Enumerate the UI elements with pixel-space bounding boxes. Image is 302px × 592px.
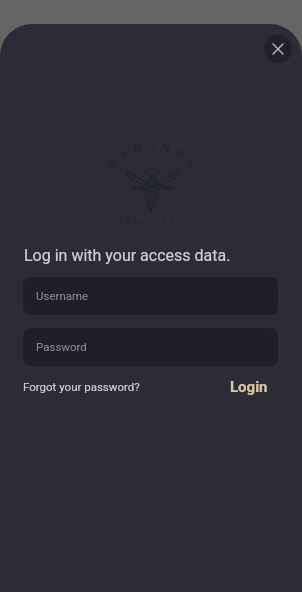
button[interactable]: Password [23,328,278,366]
staticText: Password [36,340,87,353]
staticText: Login [230,378,268,396]
staticText: Log in with your access data. [24,246,231,265]
button[interactable]: Login [230,378,268,396]
staticText: Forgot your password? [23,380,140,393]
button[interactable]: Forgot your password? [23,380,140,393]
button[interactable]: Username [23,277,278,315]
staticText: Username [36,289,89,302]
button[interactable]: Close [264,35,292,63]
button[interactable]: Log in with your access data. [24,246,231,265]
